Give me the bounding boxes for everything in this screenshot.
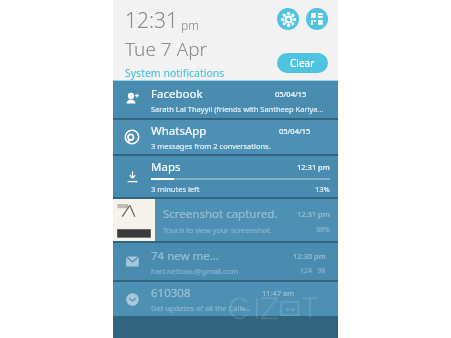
staticText: Facebook — [151, 86, 203, 102]
staticText: 12:30 pm — [293, 251, 326, 261]
staticText: 05/04/15 — [275, 89, 307, 99]
staticText: WhatsApp — [151, 123, 207, 139]
staticText: Get updates of all the Calls… — [151, 303, 326, 313]
staticText: 05/04/15 — [279, 126, 311, 136]
button[interactable]: Clear — [277, 53, 328, 73]
button[interactable]: Quick settings — [306, 8, 328, 30]
staticText: Sarath Lal Thayyil (friends with Santhee… — [151, 104, 326, 114]
staticText: 610308 — [151, 285, 191, 301]
staticText: 3 minutes left — [151, 184, 200, 194]
staticText: 74 new messages — [151, 248, 222, 264]
button[interactable]: Settings — [277, 8, 299, 30]
staticText: Touch to view your screenshot. — [163, 225, 272, 235]
staticText: 124 98 — [300, 266, 326, 276]
staticText: Clear — [290, 56, 315, 70]
staticText: Maps — [151, 159, 181, 175]
staticText: 12:31 pm — [297, 162, 330, 172]
staticText: pm — [181, 17, 199, 33]
staticText: 11:47 am — [262, 288, 295, 298]
staticText: 12:31 — [125, 6, 179, 35]
button[interactable]: Facebook — [113, 81, 338, 118]
staticText: 12:31 pm — [297, 209, 330, 219]
button[interactable]: 74 new messages — [113, 243, 338, 280]
staticText: 13% — [315, 184, 330, 194]
staticText: 3 messages from 2 conversations. — [151, 141, 326, 151]
button[interactable]: Screenshot captured. — [113, 199, 338, 241]
button[interactable]: Maps — [113, 156, 338, 197]
staticText: hari.nettoau@gmail.com — [151, 266, 300, 276]
staticText: Tue 7 Apr — [125, 36, 208, 62]
staticText: Screenshot captured. — [163, 206, 278, 222]
staticText: 98% — [316, 225, 330, 235]
button[interactable]: WhatsApp — [113, 120, 338, 154]
staticText: System notifications — [125, 66, 225, 80]
button[interactable]: 610308 — [113, 282, 338, 316]
button[interactable]: System notifications — [125, 66, 225, 80]
